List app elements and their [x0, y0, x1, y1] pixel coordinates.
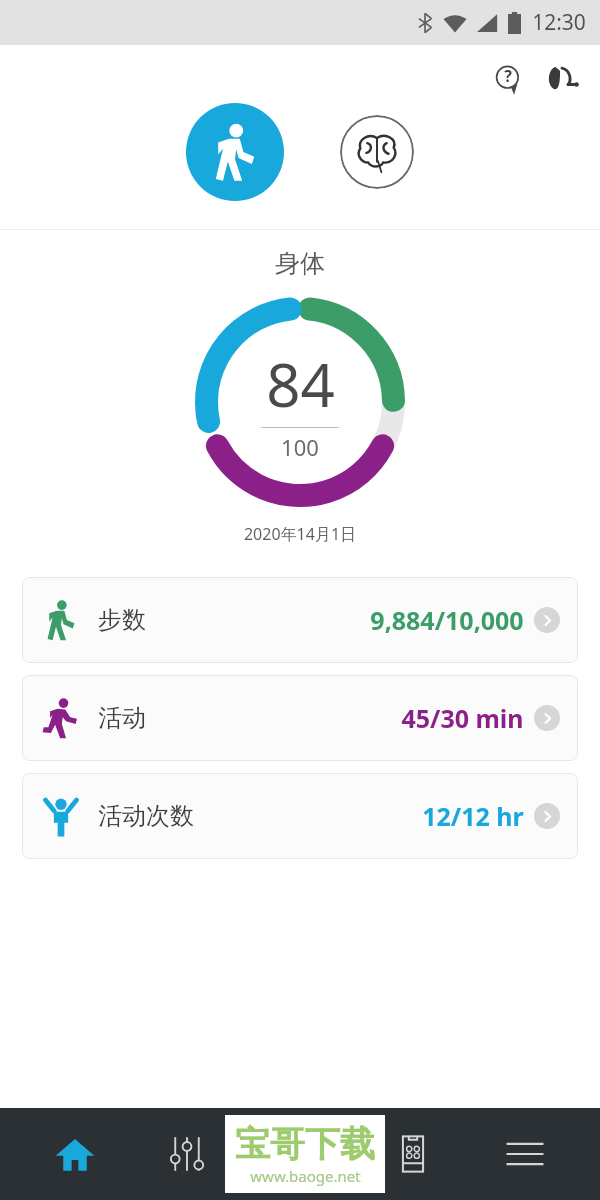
button[interactable]: 活动	[22, 675, 578, 761]
staticText: 100	[281, 432, 319, 462]
button[interactable]: 步数	[22, 577, 578, 663]
staticText: 12:30	[532, 8, 586, 37]
button[interactable]: Help	[488, 59, 528, 99]
staticText: www.baoge.net	[250, 1166, 361, 1186]
button[interactable]: Hearing aid device	[540, 57, 584, 101]
staticText: 12/12 hr	[422, 799, 524, 833]
staticText: 身体	[0, 248, 600, 279]
staticText: 9,884/10,000	[370, 603, 524, 637]
staticText: 2020年14月1日	[0, 523, 600, 545]
button[interactable]: Settings sliders	[149, 1116, 225, 1192]
staticText: 活动次数	[98, 801, 194, 831]
button[interactable]: 活动次数	[22, 773, 578, 859]
button[interactable]: Menu	[487, 1116, 563, 1192]
button[interactable]: Body activity tab	[186, 103, 284, 201]
staticText: 45/30 min	[401, 701, 524, 735]
staticText: 活动	[98, 703, 146, 733]
staticText: ?	[504, 65, 512, 87]
button[interactable]: Remote device	[375, 1116, 451, 1192]
staticText: 宝哥下载	[235, 1122, 375, 1166]
staticText: 步数	[98, 605, 146, 635]
staticText: 84	[266, 343, 335, 425]
button[interactable]: Programs	[262, 1116, 338, 1192]
button[interactable]: Home	[37, 1116, 113, 1192]
button[interactable]: Brain mind tab	[340, 115, 414, 189]
